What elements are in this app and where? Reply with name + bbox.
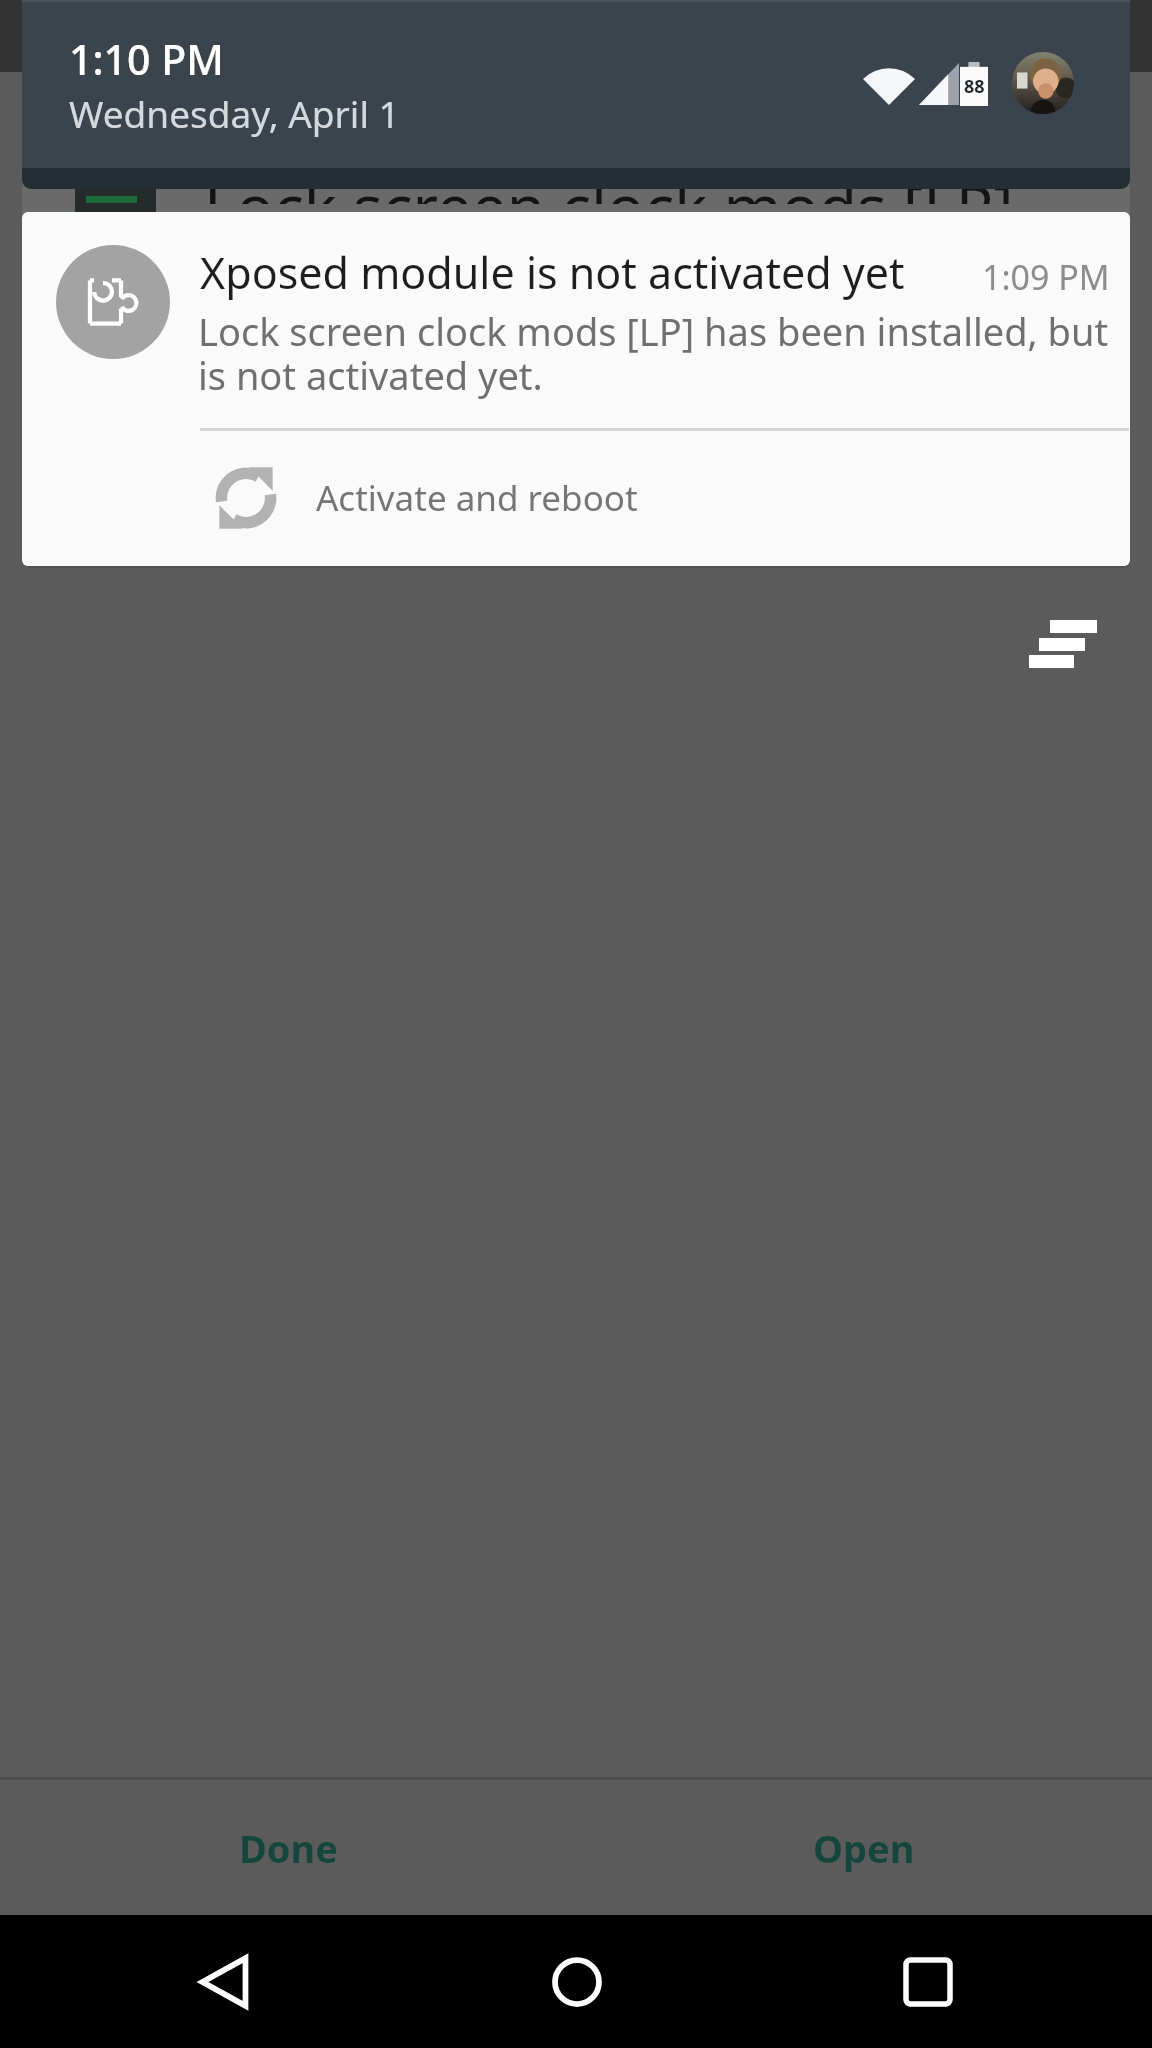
staticText: Done xyxy=(239,1822,338,1874)
staticText: Lock screen clock mods [LP] xyxy=(204,164,1014,204)
button[interactable]: Recents xyxy=(864,1915,992,2048)
staticText: Xposed module is not activated yet xyxy=(200,243,905,302)
button[interactable]: Home xyxy=(513,1915,641,2048)
button[interactable]: Open xyxy=(576,1780,1152,1915)
staticText: 88 xyxy=(964,74,985,99)
button[interactable]: Done xyxy=(0,1780,576,1915)
staticText: 1:10 PM xyxy=(69,31,224,87)
staticText: Open xyxy=(813,1822,915,1874)
staticText: Lock screen clock mods [LP] has been ins… xyxy=(198,305,1109,401)
button[interactable]: Back xyxy=(160,1915,288,2048)
staticText: 1:09 PM xyxy=(982,254,1110,300)
staticText: Wednesday, April 1 xyxy=(69,88,400,138)
staticText: Activate and reboot xyxy=(316,474,638,522)
button[interactable]: Sort xyxy=(1007,598,1099,690)
button[interactable]: Profile xyxy=(1012,52,1074,114)
button[interactable]: Activate and reboot xyxy=(22,430,1130,566)
